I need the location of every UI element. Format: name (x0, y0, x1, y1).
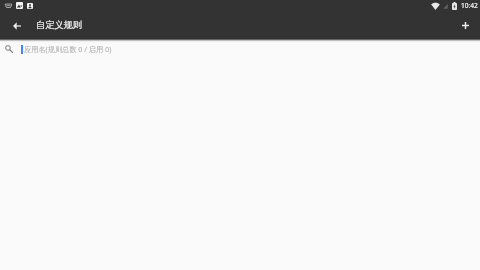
staticText: 10:42 (461, 1, 478, 10)
staticText: 自定义规则 (36, 19, 82, 31)
button[interactable]: Search (0, 42, 480, 55)
staticText: 应用名(规则总数 0 / 启用 0) (24, 44, 112, 54)
button[interactable]: Back (7, 16, 26, 35)
button[interactable]: Add (456, 16, 475, 35)
